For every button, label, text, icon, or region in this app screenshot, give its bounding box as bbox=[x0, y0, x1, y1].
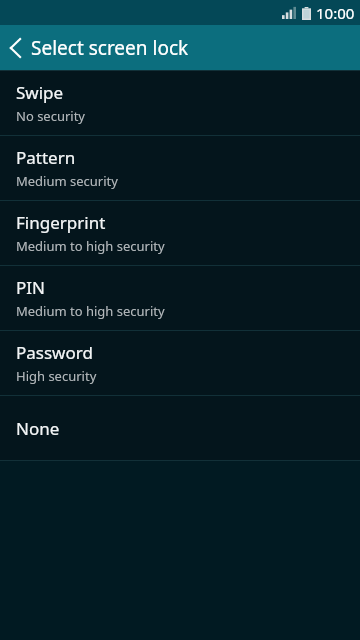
staticText: Password bbox=[16, 341, 93, 364]
staticText: Select screen lock bbox=[31, 35, 189, 61]
staticText: High security bbox=[16, 367, 97, 385]
staticText: Swipe bbox=[16, 81, 64, 104]
staticText: Pattern bbox=[16, 146, 76, 169]
staticText: Medium to high security bbox=[16, 237, 165, 255]
button[interactable]: Password bbox=[0, 331, 360, 395]
staticText: 10:00 bbox=[316, 3, 355, 23]
staticText: Fingerprint bbox=[16, 211, 106, 234]
staticText: Medium security bbox=[16, 172, 118, 190]
button[interactable]: PIN bbox=[0, 266, 360, 330]
staticText: PIN bbox=[16, 276, 45, 299]
staticText: None bbox=[16, 417, 60, 440]
button[interactable]: None bbox=[0, 396, 360, 460]
button[interactable]: Swipe bbox=[0, 71, 360, 135]
staticText: No security bbox=[16, 107, 86, 125]
staticText: Medium to high security bbox=[16, 302, 165, 320]
button[interactable]: Back bbox=[0, 25, 31, 70]
button[interactable]: Fingerprint bbox=[0, 201, 360, 265]
button[interactable]: Pattern bbox=[0, 136, 360, 200]
